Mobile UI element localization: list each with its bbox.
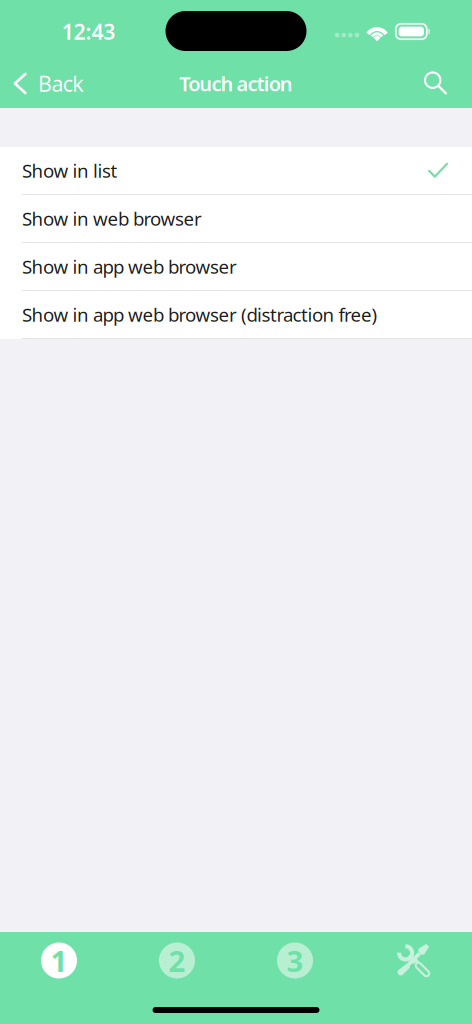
staticText: Back <box>38 69 83 98</box>
button[interactable]: Show in app web browser (distraction fre… <box>0 291 472 339</box>
button[interactable]: Show in web browser <box>0 195 472 243</box>
staticText: Show in app web browser (distraction fre… <box>22 302 377 327</box>
button[interactable]: Back <box>0 61 93 105</box>
staticText: 12:43 <box>62 17 115 46</box>
staticText: 3 <box>286 941 303 980</box>
button[interactable]: Search <box>408 61 472 105</box>
staticText: Touch action <box>179 70 293 97</box>
staticText: 2 <box>168 941 185 980</box>
button[interactable]: Tab two <box>118 932 236 989</box>
button[interactable]: Tab three <box>236 932 354 989</box>
staticText: Show in web browser <box>22 206 202 231</box>
staticText: 1 <box>50 941 67 980</box>
staticText: Show in app web browser <box>22 254 237 279</box>
staticText: Show in list <box>22 158 117 183</box>
button[interactable]: Show in app web browser <box>0 243 472 291</box>
button[interactable]: Show in list <box>0 147 472 195</box>
button[interactable]: Tab one <box>0 932 118 989</box>
button[interactable]: Tools <box>354 932 472 989</box>
